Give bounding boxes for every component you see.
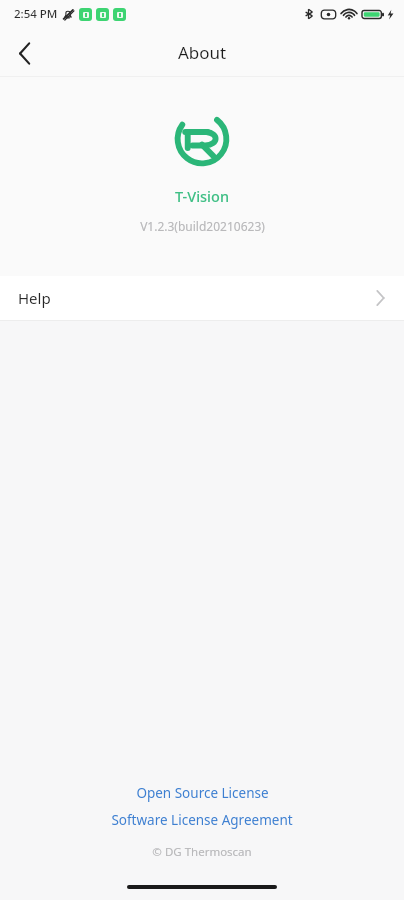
staticText: Help xyxy=(18,288,51,308)
staticText: 2:54 PM xyxy=(14,6,58,22)
button[interactable]: Back xyxy=(0,29,48,77)
staticText: V1.2.3(build20210623) xyxy=(140,218,265,234)
button[interactable]: Help xyxy=(0,276,404,320)
staticText: T-Vision xyxy=(175,186,229,206)
staticText: About xyxy=(178,41,227,64)
button[interactable]: Open Source License xyxy=(126,781,279,805)
staticText: © DG Thermoscan xyxy=(152,844,252,860)
button[interactable]: Software License Agreement xyxy=(101,808,303,832)
